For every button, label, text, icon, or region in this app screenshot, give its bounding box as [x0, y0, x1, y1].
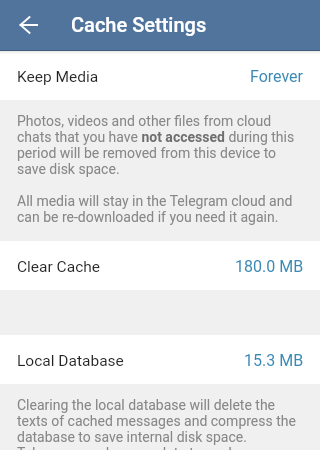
button[interactable]: Back [9, 6, 49, 46]
staticText: Clear Cache [17, 258, 100, 276]
staticText: Cache Settings [71, 13, 207, 36]
button[interactable]: Keep Media [0, 51, 320, 100]
staticText: Photos, videos and other files from clou… [17, 113, 303, 177]
button[interactable]: Local Database [0, 335, 320, 384]
staticText: 15.3 MB [244, 351, 304, 370]
staticText: Keep Media [17, 68, 99, 86]
staticText: Local Database [17, 352, 124, 370]
staticText: Forever [250, 67, 304, 86]
staticText: Clearing the local database will delete … [17, 397, 303, 450]
staticText: All media will stay in the Telegram clou… [17, 193, 303, 225]
staticText: 180.0 MB [235, 257, 304, 276]
button[interactable]: Clear Cache [0, 241, 320, 290]
